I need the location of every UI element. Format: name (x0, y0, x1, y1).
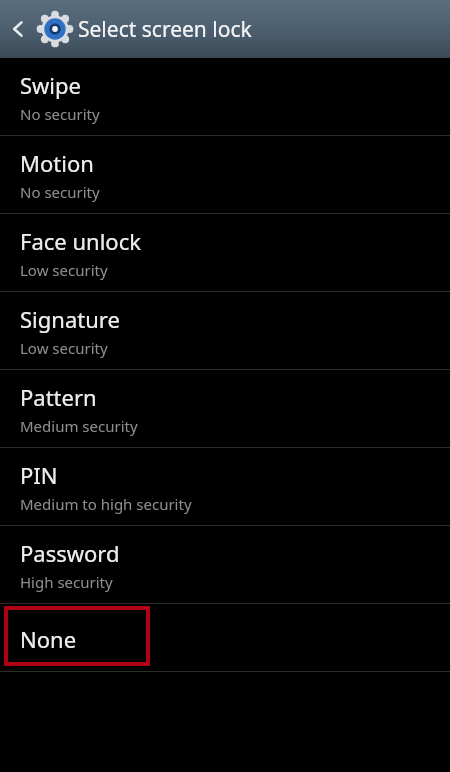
button[interactable]: Back (0, 0, 36, 58)
button[interactable]: Swipe (0, 58, 450, 135)
staticText: Select screen lock (78, 15, 252, 44)
button[interactable]: Face unlock (0, 214, 450, 291)
staticText: Low security (20, 338, 108, 358)
button[interactable]: Signature (0, 292, 450, 369)
button[interactable]: PIN (0, 448, 450, 525)
staticText: High security (20, 572, 113, 592)
button[interactable]: None (0, 604, 450, 671)
staticText: No security (20, 104, 100, 124)
staticText: Swipe (20, 70, 81, 100)
staticText: Signature (20, 304, 120, 334)
staticText: Motion (20, 148, 94, 178)
staticText: Low security (20, 260, 108, 280)
staticText: PIN (20, 460, 58, 490)
button[interactable]: Pattern (0, 370, 450, 447)
button[interactable]: Motion (0, 136, 450, 213)
staticText: Medium to high security (20, 494, 192, 514)
staticText: Pattern (20, 382, 97, 412)
staticText: No security (20, 182, 100, 202)
staticText: Face unlock (20, 226, 141, 256)
button[interactable]: Password (0, 526, 450, 603)
staticText: None (20, 624, 77, 654)
staticText: Password (20, 538, 120, 568)
staticText: Medium security (20, 416, 138, 436)
